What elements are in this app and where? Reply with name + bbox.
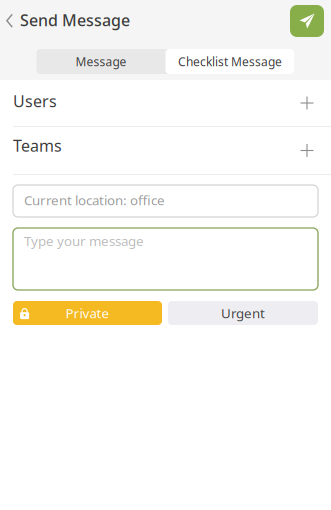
staticText: Urgent: [221, 304, 265, 322]
button[interactable]: Urgent: [168, 301, 318, 325]
button[interactable]: Send: [290, 5, 331, 37]
button[interactable]: Message: [36, 49, 165, 74]
staticText: Current location: office: [24, 191, 165, 209]
staticText: Send Message: [20, 9, 130, 31]
button[interactable]: Private: [13, 301, 162, 325]
button[interactable]: Send Message: [0, 0, 138, 42]
button[interactable]: Type your message: [0, 217, 331, 290]
button[interactable]: Users: [0, 80, 331, 126]
staticText: Users: [13, 90, 57, 112]
staticText: Message: [75, 53, 126, 69]
staticText: Type your message: [24, 232, 144, 250]
staticText: Teams: [13, 135, 62, 156]
staticText: Private: [65, 304, 109, 322]
button[interactable]: Current location: office: [0, 175, 331, 217]
button[interactable]: Teams: [0, 127, 331, 174]
button[interactable]: Checklist Message: [165, 49, 294, 74]
staticText: Checklist Message: [178, 53, 282, 69]
